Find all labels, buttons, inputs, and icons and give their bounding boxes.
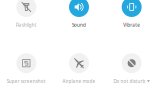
staticText: Do not disturb: [113, 78, 145, 84]
staticText: Airplane mode: [62, 78, 95, 84]
button[interactable]: Sound: [53, 0, 105, 28]
staticText: Super screenshot: [7, 78, 46, 84]
button[interactable]: Super screenshot: [0, 53, 53, 84]
staticText: Vibrate: [123, 22, 140, 28]
staticText: Sound: [72, 22, 86, 28]
button[interactable]: Airplane mode: [53, 53, 105, 84]
button[interactable]: Flashlight: [0, 0, 53, 28]
button[interactable]: Vibrate: [105, 0, 158, 28]
staticText: Flashlight: [16, 22, 37, 28]
button[interactable]: Do not disturb: [105, 53, 158, 84]
